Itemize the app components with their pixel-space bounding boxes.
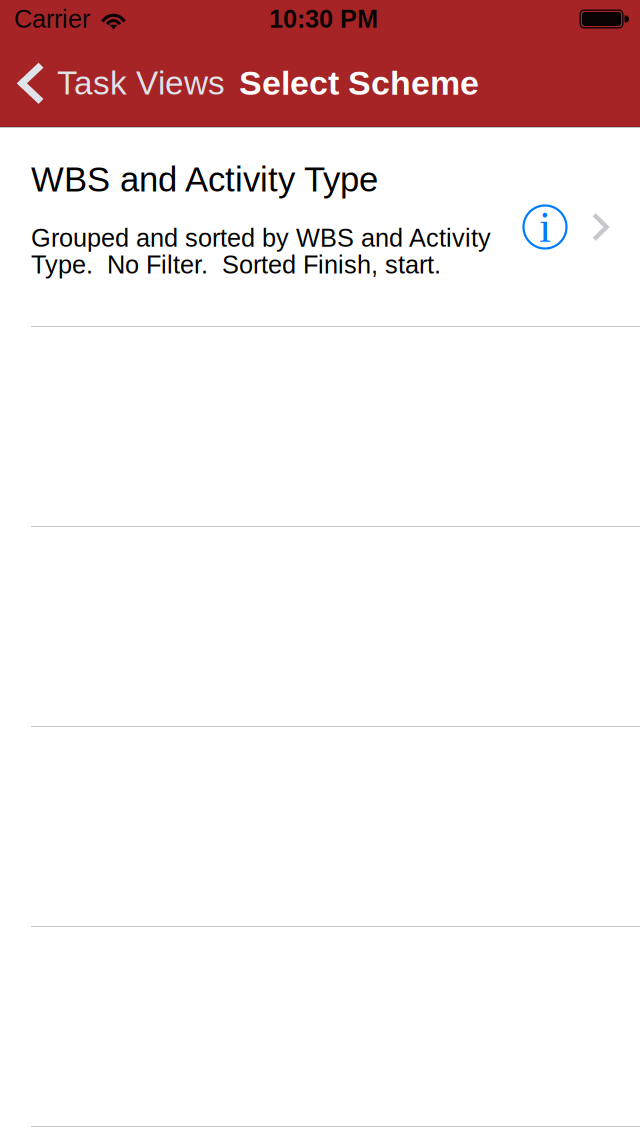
staticText: Select Scheme [239,64,479,102]
staticText: Task Views [57,64,225,102]
staticText: Grouped and sorted by WBS and Activity [31,224,491,252]
staticText: Type. No Filter. Sorted Finish, start. [31,250,441,279]
staticText: Carrier [14,5,90,33]
button[interactable]: WBS and Activity Type [0,128,640,327]
button[interactable]: Task Views [0,39,239,127]
staticText: WBS and Activity Type [31,160,378,199]
staticText: i [539,203,551,251]
staticText: 10:30 PM [269,5,378,33]
